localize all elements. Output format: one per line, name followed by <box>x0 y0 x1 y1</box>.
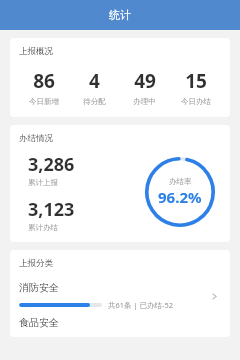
staticText: 统计 <box>109 8 131 22</box>
button[interactable]: 消防安全 <box>19 281 221 310</box>
staticText: 办理中 <box>133 97 156 106</box>
staticText: 今日新增 <box>29 97 59 106</box>
staticText: 待分配 <box>83 97 106 106</box>
button[interactable]: 15 <box>170 68 221 106</box>
staticText: 办结情况 <box>19 133 53 144</box>
staticText: 累计办结 <box>28 223 58 232</box>
staticText: 3,286 <box>28 152 75 177</box>
button[interactable]: 86 <box>19 68 69 106</box>
staticText: 共61条 | 已办结-52 <box>108 300 174 310</box>
staticText: 3,123 <box>28 197 75 222</box>
staticText: 办结率 <box>169 177 192 186</box>
button[interactable]: 4 <box>69 68 119 106</box>
button[interactable]: 办结率 96.2% <box>145 157 215 227</box>
staticText: 96.2% <box>158 187 202 207</box>
staticText: 上报概况 <box>19 46 53 57</box>
staticText: 86 <box>33 68 55 94</box>
staticText: 食品安全 <box>19 316 59 329</box>
staticText: 消防安全 <box>19 281 59 294</box>
staticText: 49 <box>134 68 156 94</box>
staticText: 上报分类 <box>19 258 53 269</box>
other: 查看详情 <box>207 289 221 303</box>
staticText: 4 <box>89 68 100 94</box>
staticText: 今日办结 <box>181 97 211 106</box>
button[interactable]: 49 <box>119 68 170 106</box>
staticText: 累计上报 <box>28 178 58 187</box>
staticText: 15 <box>185 68 207 94</box>
